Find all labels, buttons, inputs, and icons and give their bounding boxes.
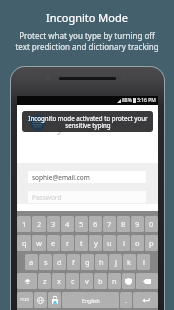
button[interactable]: 9 xyxy=(131,216,144,232)
button[interactable]: Private typing xyxy=(48,292,61,308)
button[interactable]: u xyxy=(103,235,116,251)
button[interactable]: o xyxy=(131,235,144,251)
staticText: 4 xyxy=(65,219,70,229)
button[interactable]: b xyxy=(94,273,107,289)
button[interactable]: z xyxy=(38,273,51,289)
staticText: g xyxy=(85,257,90,267)
staticText: j xyxy=(115,257,117,267)
staticText: o xyxy=(135,238,140,248)
button[interactable]: Incognito mode activated to protect your… xyxy=(22,111,153,132)
button[interactable]: 6 xyxy=(89,216,102,232)
button[interactable]: 2 xyxy=(32,216,46,232)
button[interactable]: 7 xyxy=(103,216,116,232)
staticText: x xyxy=(57,276,61,286)
staticText: b xyxy=(98,276,103,286)
button[interactable]: 8 xyxy=(117,216,130,232)
button[interactable]: s xyxy=(39,254,52,270)
staticText: 3 xyxy=(51,219,56,229)
button[interactable]: c xyxy=(66,273,79,289)
button[interactable]: a xyxy=(25,254,38,270)
button[interactable]: e xyxy=(47,235,60,251)
button[interactable]: Shift xyxy=(17,273,37,289)
button[interactable]: English xyxy=(62,292,119,308)
button[interactable]: ?123 xyxy=(17,292,33,308)
staticText: a xyxy=(29,257,34,267)
staticText: u xyxy=(107,238,112,248)
staticText: v xyxy=(85,276,89,286)
button[interactable]: y xyxy=(89,235,102,251)
staticText: 8 xyxy=(121,219,126,229)
button[interactable]: 3 xyxy=(47,216,60,232)
staticText: c xyxy=(71,276,75,286)
staticText: 9 xyxy=(135,219,140,229)
staticText: n xyxy=(112,276,117,286)
button[interactable]: 1 xyxy=(17,216,31,232)
button[interactable]: r xyxy=(61,235,74,251)
button[interactable]: . xyxy=(120,292,132,308)
button[interactable]: n xyxy=(108,273,121,289)
staticText: 88% xyxy=(122,97,132,104)
staticText: 1 xyxy=(22,219,27,229)
staticText: l xyxy=(143,257,145,267)
staticText: e xyxy=(51,238,56,248)
staticText: Protect what you type by turning off tex… xyxy=(15,30,159,52)
button[interactable]: p xyxy=(145,235,158,251)
staticText: z xyxy=(43,276,47,286)
staticText: 6 xyxy=(93,219,98,229)
button[interactable]: 4 xyxy=(61,216,74,232)
button[interactable]: f xyxy=(67,254,80,270)
button[interactable]: d xyxy=(53,254,66,270)
staticText: 0 xyxy=(149,219,154,229)
button[interactable]: Password xyxy=(28,191,146,203)
staticText: k xyxy=(127,257,132,267)
staticText: s xyxy=(69,123,73,134)
staticText: . xyxy=(125,295,128,305)
button[interactable]: i xyxy=(117,235,130,251)
staticText: f xyxy=(72,257,75,267)
button[interactable]: k xyxy=(123,254,136,270)
staticText: h xyxy=(99,257,104,267)
button[interactable]: 5 xyxy=(75,216,88,232)
button[interactable]: j xyxy=(109,254,122,270)
staticText: q xyxy=(22,238,27,248)
button[interactable]: sophie@email.com xyxy=(28,171,146,183)
button[interactable]: g xyxy=(81,254,94,270)
button[interactable]: l xyxy=(137,254,150,270)
button[interactable]: Incognito keyboard xyxy=(122,273,135,289)
staticText: w xyxy=(36,238,42,248)
staticText: sophie@email.com xyxy=(32,173,90,182)
staticText: 3:16 PM xyxy=(137,97,156,104)
staticText: Incognito Mode xyxy=(46,10,128,25)
button[interactable]: 0 xyxy=(145,216,158,232)
staticText: i xyxy=(123,238,125,248)
staticText: Password xyxy=(32,193,62,202)
button[interactable]: t xyxy=(75,235,88,251)
staticText: 7 xyxy=(107,219,112,229)
button[interactable]: w xyxy=(32,235,46,251)
staticText: 2 xyxy=(37,219,42,229)
staticText: Try xyxy=(47,120,63,135)
button[interactable]: q xyxy=(17,235,31,251)
staticText: Incognito mode activated to protect your… xyxy=(28,114,148,130)
button[interactable]: Backspace xyxy=(136,273,158,289)
button[interactable]: Enter xyxy=(133,292,158,308)
staticText: y xyxy=(94,238,98,248)
staticText: ?123 xyxy=(20,297,30,303)
button[interactable]: v xyxy=(80,273,93,289)
button[interactable]: x xyxy=(52,273,65,289)
button[interactable]: h xyxy=(95,254,108,270)
staticText: d xyxy=(57,257,62,267)
staticText: r xyxy=(66,238,70,248)
staticText: 5 xyxy=(79,219,84,229)
staticText: s xyxy=(44,257,48,267)
staticText: p xyxy=(149,238,154,248)
staticText: t xyxy=(80,238,83,248)
button[interactable]: Change language xyxy=(34,292,47,308)
staticText: English xyxy=(82,297,100,304)
